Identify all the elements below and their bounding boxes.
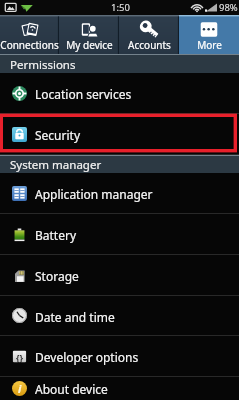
button[interactable]: {} bbox=[0, 336, 239, 376]
staticText: Permissions bbox=[10, 57, 76, 73]
button[interactable]: Connections bbox=[0, 15, 59, 54]
button[interactable]: Application manager bbox=[0, 173, 239, 213]
button[interactable]: Storage bbox=[0, 255, 239, 295]
staticText: Connections bbox=[0, 38, 59, 52]
staticText: Accounts bbox=[128, 38, 171, 52]
staticText: 1:50 bbox=[111, 1, 130, 14]
staticText: Battery bbox=[35, 227, 77, 243]
button[interactable]: Accounts bbox=[119, 15, 179, 54]
button[interactable]: Location services bbox=[0, 73, 239, 113]
staticText: Developer options bbox=[35, 349, 139, 365]
staticText: Security bbox=[35, 127, 81, 143]
staticText: Location services bbox=[35, 86, 132, 102]
staticText: i bbox=[18, 381, 22, 396]
button[interactable]: My device bbox=[59, 15, 119, 54]
staticText: Storage bbox=[35, 268, 79, 284]
button[interactable]: Security bbox=[0, 114, 239, 154]
staticText: About device bbox=[35, 381, 108, 397]
staticText: More bbox=[197, 38, 222, 52]
button[interactable]: Date and time bbox=[0, 296, 239, 335]
staticText: Application manager bbox=[35, 186, 153, 202]
button[interactable]: More bbox=[179, 15, 239, 54]
staticText: 98% bbox=[219, 1, 238, 14]
staticText: System manager bbox=[10, 157, 102, 173]
button[interactable]: i bbox=[0, 368, 239, 400]
staticText: My device bbox=[66, 38, 113, 52]
staticText: {} bbox=[16, 351, 24, 363]
staticText: Date and time bbox=[35, 309, 115, 325]
button[interactable]: Battery bbox=[0, 214, 239, 254]
